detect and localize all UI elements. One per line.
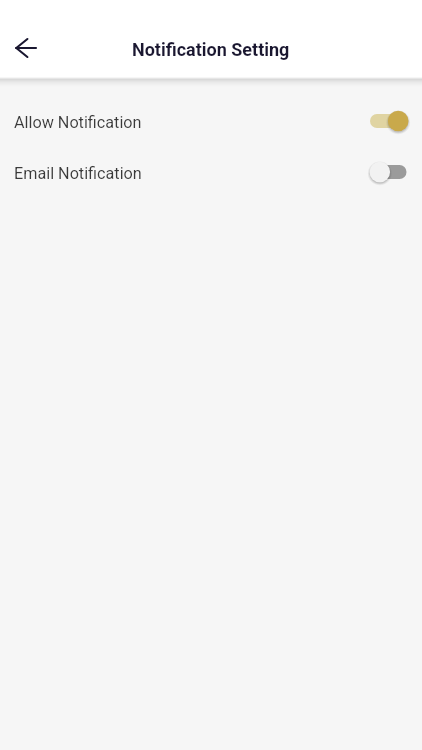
button[interactable]: Toggle Allow Notification [369, 109, 409, 133]
button[interactable]: Allow Notification [0, 110, 422, 134]
button[interactable]: Toggle Email Notification [369, 160, 409, 184]
button[interactable]: Email Notification [0, 161, 422, 185]
staticText: Allow Notification [14, 113, 142, 132]
button[interactable]: Back [2, 24, 50, 72]
staticText: Email Notification [14, 164, 142, 183]
staticText: Notification Setting [132, 39, 290, 60]
